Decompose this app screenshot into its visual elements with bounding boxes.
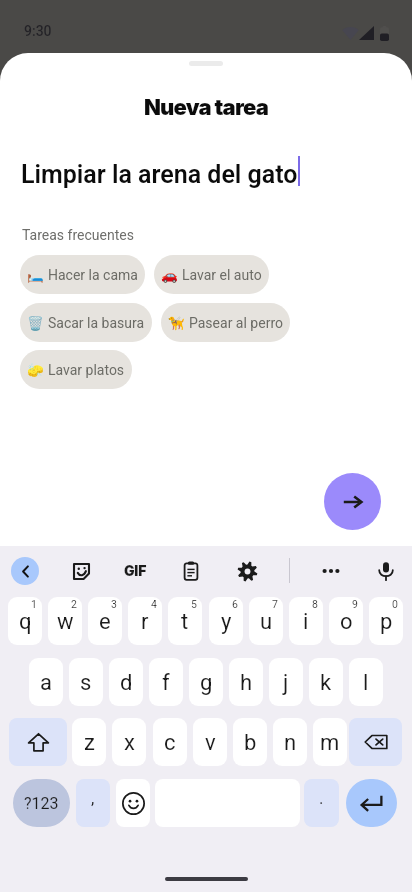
staticText: h [240, 670, 253, 696]
staticText: Sacar la basura [48, 315, 145, 331]
staticText: GIF [124, 562, 147, 579]
staticText: 2 [71, 598, 77, 610]
staticText: z [84, 730, 95, 756]
staticText: r [141, 609, 149, 635]
button[interactable]: m [313, 718, 347, 766]
button[interactable]: 🧽 [20, 350, 132, 389]
staticText: Tareas frecuentes [22, 227, 134, 243]
staticText: 0 [392, 598, 398, 610]
button[interactable]: d [109, 658, 143, 706]
staticText: Lavar platos [48, 362, 125, 378]
staticText: l [363, 670, 369, 696]
staticText: ?123 [24, 794, 59, 813]
button[interactable]: p [369, 597, 403, 645]
button[interactable]: Settings [231, 555, 263, 587]
staticText: Lavar el auto [182, 267, 262, 283]
staticText: c [164, 730, 176, 756]
button[interactable]: 🗑️ [20, 303, 152, 342]
button[interactable]: t [168, 597, 202, 645]
staticText: b [244, 730, 257, 756]
staticText: g [200, 670, 213, 696]
staticText: 9 [352, 598, 358, 610]
button[interactable]: w [48, 597, 82, 645]
staticText: s [80, 670, 92, 696]
staticText: v [205, 730, 216, 756]
button[interactable]: e [88, 597, 122, 645]
button[interactable]: x [112, 718, 146, 766]
staticText: 🦮 [168, 315, 185, 331]
staticText: 8 [312, 598, 318, 610]
staticText: k [320, 670, 332, 696]
button[interactable]: GIF [119, 556, 151, 584]
staticText: y [221, 609, 232, 635]
button[interactable]: 🛏️ [20, 255, 145, 294]
button[interactable]: z [72, 718, 106, 766]
button[interactable]: y [209, 597, 243, 645]
button[interactable]: g [189, 658, 223, 706]
button[interactable]: Guardar tarea [324, 473, 381, 530]
staticText: Hacer la cama [48, 267, 138, 283]
staticText: 🗑️ [27, 315, 44, 331]
button[interactable]: u [249, 597, 283, 645]
button[interactable]: r [128, 597, 162, 645]
staticText: a [40, 670, 52, 696]
button[interactable]: o [329, 597, 363, 645]
staticText: Nueva tarea [0, 94, 412, 121]
staticText: j [283, 670, 289, 696]
staticText: 3 [111, 598, 117, 610]
button[interactable]: n [273, 718, 307, 766]
staticText: o [340, 609, 353, 635]
staticText: 7 [272, 598, 278, 610]
staticText: Pasear al perro [189, 315, 283, 331]
staticText: . [319, 788, 324, 808]
staticText: 🧽 [27, 362, 44, 378]
button[interactable]: Shift [9, 718, 67, 766]
button[interactable]: j [269, 658, 303, 706]
staticText: f [162, 670, 170, 696]
staticText: t [181, 609, 189, 635]
staticText: 1 [31, 598, 37, 610]
staticText: p [380, 609, 393, 635]
staticText: q [19, 609, 32, 635]
staticText: i [303, 609, 309, 635]
staticText: w [57, 609, 74, 635]
staticText: Limpiar la arena del gato [21, 160, 298, 189]
button[interactable]: Voice input [370, 555, 402, 587]
staticText: 🚗 [161, 267, 178, 283]
button[interactable]: Clipboard [175, 555, 207, 587]
staticText: e [99, 609, 111, 635]
button[interactable]: Backspace [349, 718, 402, 766]
staticText: n [284, 730, 297, 756]
button[interactable]: ?123 [13, 779, 70, 827]
staticText: 5 [191, 598, 197, 610]
button[interactable]: q [8, 597, 42, 645]
staticText: m [320, 730, 340, 756]
button[interactable]: , [76, 779, 110, 827]
button[interactable]: 🦮 [161, 303, 290, 342]
staticText: 🛏️ [27, 267, 44, 283]
button[interactable]: Stickers [65, 555, 97, 587]
staticText: , [91, 788, 95, 808]
button[interactable]: b [233, 718, 267, 766]
button[interactable]: s [69, 658, 103, 706]
button[interactable]: l [349, 658, 383, 706]
button[interactable]: k [309, 658, 343, 706]
staticText: x [124, 730, 135, 756]
button[interactable]: h [229, 658, 263, 706]
button[interactable]: More options [315, 555, 347, 587]
button[interactable]: i [289, 597, 323, 645]
button[interactable]: Emoji [116, 779, 150, 827]
staticText: 9:30 [24, 23, 52, 39]
staticText: 4 [151, 598, 157, 610]
button[interactable]: a [29, 658, 63, 706]
button[interactable]: Back [11, 557, 39, 585]
button[interactable]: 🚗 [154, 255, 269, 294]
button[interactable]: . [304, 779, 339, 827]
button[interactable]: Enter [346, 779, 397, 827]
button[interactable]: c [153, 718, 187, 766]
button[interactable]: f [149, 658, 183, 706]
button[interactable]: v [193, 718, 227, 766]
staticText: d [120, 670, 133, 696]
staticText: u [260, 609, 273, 635]
